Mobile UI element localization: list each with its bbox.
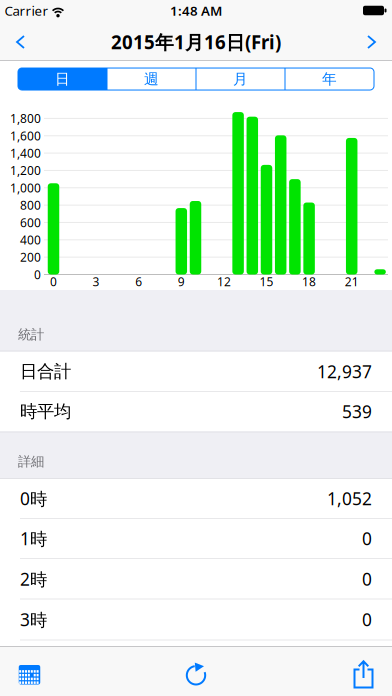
button[interactable]: 週 <box>107 68 196 90</box>
staticText: 400 <box>20 232 41 248</box>
staticText: 1:48 AM <box>170 2 222 19</box>
staticText: 1,000 <box>10 180 41 196</box>
staticText: 年 <box>322 70 337 88</box>
button[interactable]: Share <box>341 650 385 694</box>
staticText: 日合計 <box>20 361 71 382</box>
staticText: 2時 <box>20 567 47 590</box>
staticText: 0 <box>34 266 41 282</box>
staticText: 6 <box>135 273 142 289</box>
staticText: 時平均 <box>20 401 71 422</box>
button[interactable]: 日 <box>18 68 107 90</box>
staticText: 0 <box>50 273 57 289</box>
staticText: 539 <box>342 400 372 423</box>
staticText: 3 <box>93 273 100 289</box>
staticText: 月 <box>233 70 248 88</box>
staticText: 200 <box>20 249 41 265</box>
staticText: 15 <box>259 273 273 289</box>
staticText: 21 <box>345 273 359 289</box>
staticText: 3時 <box>20 608 47 631</box>
staticText: 800 <box>20 197 41 213</box>
staticText: 2015年1月16日(Fri) <box>111 30 281 54</box>
staticText: 1,200 <box>10 162 41 178</box>
staticText: 12,937 <box>317 360 372 383</box>
staticText: 0時 <box>20 487 47 510</box>
staticText: 1,800 <box>10 110 41 126</box>
staticText: 1,400 <box>10 145 41 161</box>
button[interactable]: Next day <box>357 25 387 59</box>
staticText: 9 <box>178 273 185 289</box>
staticText: 1時 <box>20 527 47 550</box>
staticText: 週 <box>144 70 159 88</box>
staticText: Carrier <box>4 2 48 19</box>
staticText: 詳細 <box>18 453 44 470</box>
staticText: 統計 <box>18 326 44 343</box>
button[interactable]: Calendar <box>7 650 51 694</box>
staticText: 1,600 <box>10 128 41 144</box>
staticText: 12 <box>217 273 231 289</box>
button[interactable]: Refresh <box>174 650 218 694</box>
staticText: 0 <box>362 527 372 550</box>
staticText: 日 <box>55 70 70 88</box>
button[interactable]: Previous day <box>5 25 35 59</box>
button[interactable]: 月 <box>196 68 285 90</box>
staticText: 1,052 <box>327 487 372 510</box>
staticText: 0 <box>362 608 372 631</box>
staticText: 18 <box>302 273 316 289</box>
staticText: 0 <box>362 567 372 590</box>
staticText: 600 <box>20 214 41 230</box>
button[interactable]: 年 <box>285 68 374 90</box>
